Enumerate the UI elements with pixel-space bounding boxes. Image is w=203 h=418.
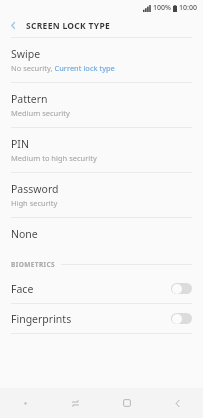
staticText: Pattern <box>11 92 48 106</box>
button[interactable]: Pattern <box>0 83 203 127</box>
staticText: SCREEN LOCK TYPE <box>26 20 111 32</box>
staticText: Fingerprints <box>11 312 72 326</box>
button[interactable]: Password <box>0 173 203 217</box>
button[interactable]: Swipe <box>0 38 203 82</box>
button[interactable]: Back <box>0 15 26 36</box>
button[interactable]: None <box>0 218 203 250</box>
button[interactable]: Recents <box>50 388 101 418</box>
button[interactable]: Face <box>0 274 203 303</box>
staticText: None <box>11 227 38 241</box>
staticText: Medium security <box>11 108 70 118</box>
button[interactable]: PIN <box>0 128 203 172</box>
staticText: No security, Current lock type <box>11 63 115 73</box>
staticText: Face <box>11 282 34 296</box>
staticText: Medium to high security <box>11 153 97 163</box>
staticText: 10:00 <box>179 3 197 13</box>
staticText: PIN <box>11 137 29 151</box>
staticText: Swipe <box>11 47 41 61</box>
button[interactable]: Back <box>152 388 203 418</box>
staticText: 100% <box>153 3 171 13</box>
staticText: BIOMETRICS <box>11 260 56 269</box>
staticText: High security <box>11 198 58 208</box>
staticText: Password <box>11 182 59 196</box>
button[interactable]: Home <box>101 388 152 418</box>
button[interactable]: Fingerprints <box>0 304 203 333</box>
